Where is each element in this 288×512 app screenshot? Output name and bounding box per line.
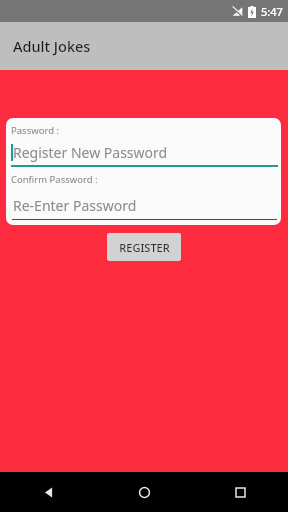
staticText: Register New Password xyxy=(13,143,168,162)
staticText: Adult Jokes xyxy=(13,36,91,56)
staticText: Re-Enter Password xyxy=(13,196,137,215)
staticText: REGISTER xyxy=(119,240,170,255)
button[interactable]: Home xyxy=(96,472,192,512)
button[interactable]: Back xyxy=(0,472,96,512)
button[interactable]: REGISTER xyxy=(107,233,181,261)
button[interactable]: Re-Enter Password xyxy=(6,193,281,217)
staticText: Confirm Password : xyxy=(11,173,98,186)
staticText: 5:47 xyxy=(261,4,283,19)
button[interactable]: Recents xyxy=(192,472,288,512)
button[interactable]: Register New Password xyxy=(6,139,281,165)
staticText: Password : xyxy=(11,124,59,137)
button[interactable]: Adult Jokes xyxy=(0,22,288,70)
